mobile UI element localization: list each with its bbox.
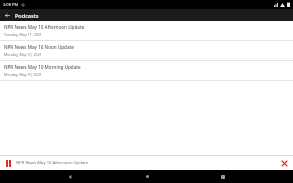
staticText: NPR News May 10 Afternoon Update [16, 160, 279, 166]
staticText: Monday, May 10, 2021 [4, 52, 42, 57]
button[interactable]: Pause [4, 159, 13, 168]
button[interactable]: NPR News May 10 Morning Update [0, 61, 293, 80]
staticText: NPR News May 10 Noon Update [4, 44, 74, 50]
staticText: NPR News May 10 Afternoon Update [4, 24, 85, 30]
button[interactable]: Recent apps [216, 170, 230, 183]
staticText: Monday, May 10, 2021 [4, 72, 42, 77]
button[interactable]: Back [2, 10, 12, 20]
staticText: Podcasts [15, 12, 39, 19]
staticText: NPR News May 10 Morning Update [4, 64, 81, 70]
button[interactable]: Home [140, 170, 154, 183]
button[interactable]: Close player [279, 158, 289, 168]
staticText: 3:08 PM [3, 2, 19, 7]
button[interactable]: Back [63, 170, 77, 183]
button[interactable]: NPR News May 10 Noon Update [0, 41, 293, 60]
button[interactable]: NPR News May 10 Afternoon Update [0, 21, 293, 40]
staticText: Tuesday, May 11, 2021 [4, 32, 42, 37]
